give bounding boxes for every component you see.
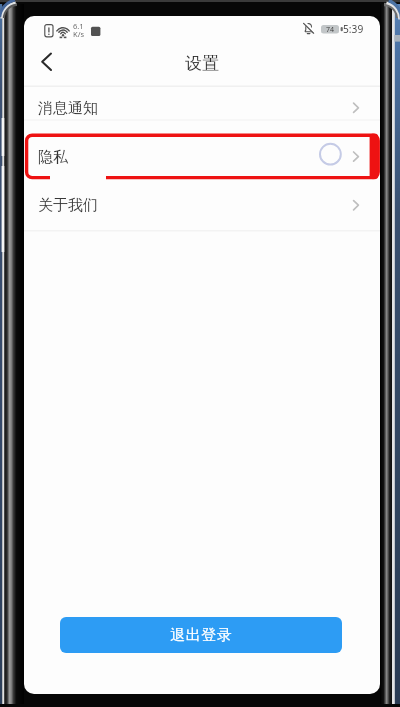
button[interactable] — [24, 191, 380, 231]
button[interactable] — [24, 87, 380, 119]
staticText: 关于我们 — [38, 196, 98, 215]
staticText: K/s — [73, 29, 85, 38]
staticText: 5:39 — [343, 22, 364, 36]
button[interactable]: 退出登录 — [60, 617, 342, 653]
staticText: 消息通知 — [38, 99, 98, 118]
button[interactable] — [24, 137, 380, 191]
staticText: 退出登录 — [170, 626, 232, 645]
staticText: 隐私 — [38, 148, 68, 167]
staticText: 设置 — [185, 53, 219, 74]
staticText: 6.1 — [73, 21, 84, 30]
staticText: 74 — [326, 25, 335, 33]
button[interactable] — [30, 52, 56, 76]
